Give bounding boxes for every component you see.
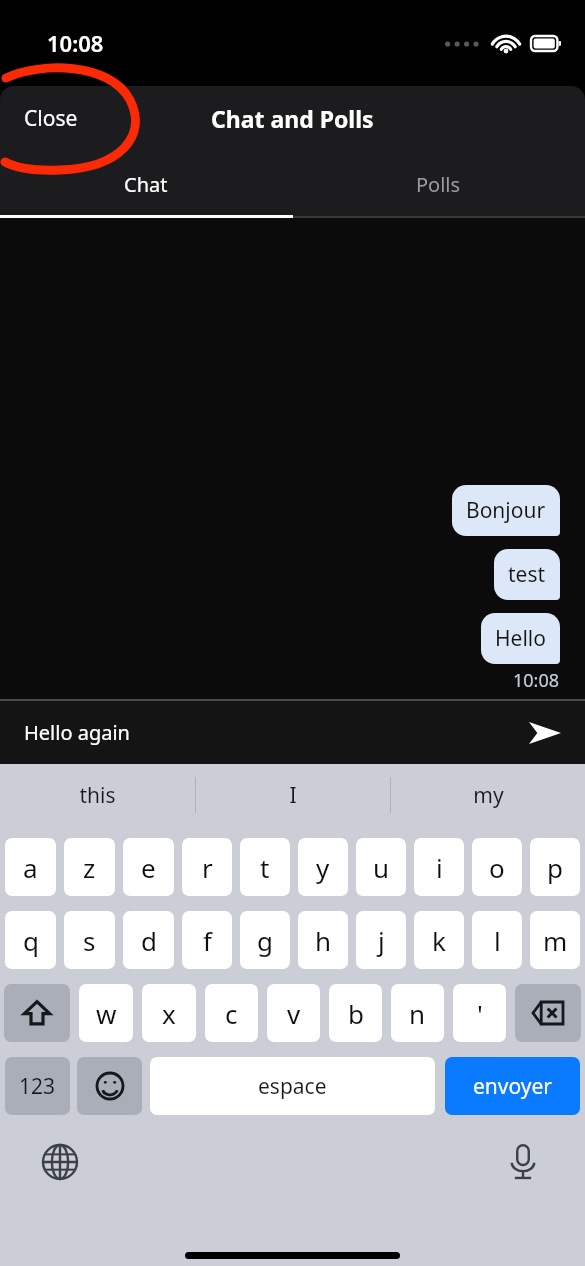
button[interactable]: Hello: [481, 613, 560, 664]
staticText: t: [260, 850, 270, 885]
button[interactable]: this: [0, 764, 195, 826]
button[interactable]: b: [329, 984, 382, 1042]
staticText: s: [83, 923, 96, 958]
button[interactable]: o: [472, 838, 522, 896]
button[interactable]: Dictate: [501, 1140, 545, 1184]
staticText: u: [373, 850, 390, 885]
button[interactable]: Change keyboard: [38, 1140, 82, 1184]
button[interactable]: ': [453, 984, 506, 1042]
button[interactable]: Bonjour: [452, 485, 560, 536]
button[interactable]: i: [414, 838, 464, 896]
staticText: l: [494, 923, 501, 958]
staticText: 10:08: [513, 668, 560, 693]
button[interactable]: v: [267, 984, 320, 1042]
staticText: b: [348, 996, 364, 1031]
staticText: x: [162, 996, 176, 1031]
button[interactable]: p: [530, 838, 580, 896]
staticText: a: [23, 850, 38, 885]
button[interactable]: Send: [521, 709, 569, 757]
button[interactable]: Close: [0, 94, 94, 143]
staticText: d: [141, 923, 157, 958]
button[interactable]: g: [240, 911, 290, 969]
button[interactable]: f: [182, 911, 232, 969]
button[interactable]: Polls: [292, 150, 585, 218]
button[interactable]: y: [298, 838, 348, 896]
staticText: n: [409, 996, 426, 1031]
button[interactable]: Chat: [0, 150, 292, 218]
button[interactable]: u: [356, 838, 406, 896]
staticText: y: [316, 850, 330, 885]
button[interactable]: espace: [150, 1057, 435, 1115]
staticText: Hello: [495, 624, 546, 653]
staticText: 10:08: [47, 28, 104, 58]
button[interactable]: q: [5, 911, 56, 969]
staticText: o: [489, 850, 505, 885]
button[interactable]: test: [494, 549, 560, 600]
staticText: Bonjour: [466, 496, 546, 525]
staticText: espace: [258, 1072, 327, 1101]
button[interactable]: t: [240, 838, 290, 896]
staticText: this: [79, 781, 116, 810]
button[interactable]: Delete: [515, 984, 581, 1042]
staticText: j: [378, 923, 385, 958]
staticText: g: [257, 923, 273, 958]
staticText: my: [473, 781, 504, 810]
staticText: f: [203, 923, 212, 958]
button[interactable]: x: [142, 984, 196, 1042]
button[interactable]: a: [5, 838, 56, 896]
staticText: 123: [19, 1072, 56, 1101]
staticText: w: [96, 996, 117, 1031]
button[interactable]: s: [64, 911, 115, 969]
button[interactable]: Numbers: [5, 1057, 70, 1115]
staticText: k: [432, 923, 446, 958]
button[interactable]: e: [123, 838, 174, 896]
staticText: p: [547, 850, 563, 885]
staticText: q: [23, 923, 39, 958]
button[interactable]: I: [196, 764, 390, 826]
button[interactable]: Emoji: [77, 1057, 142, 1115]
staticText: m: [543, 923, 568, 958]
button[interactable]: l: [472, 911, 522, 969]
button[interactable]: d: [123, 911, 174, 969]
staticText: e: [141, 850, 156, 885]
staticText: Chat and Polls: [211, 103, 374, 134]
button[interactable]: k: [414, 911, 464, 969]
button[interactable]: r: [182, 838, 232, 896]
staticText: v: [287, 996, 301, 1031]
button[interactable]: Shift: [4, 984, 70, 1042]
button[interactable]: m: [530, 911, 580, 969]
button[interactable]: envoyer: [445, 1057, 580, 1115]
staticText: envoyer: [473, 1072, 553, 1101]
staticText: c: [225, 996, 238, 1031]
button[interactable]: n: [391, 984, 444, 1042]
staticText: I: [289, 781, 297, 810]
staticText: Close: [24, 104, 78, 133]
staticText: i: [436, 850, 443, 885]
staticText: Hello again: [24, 719, 130, 746]
staticText: r: [202, 850, 213, 885]
button[interactable]: z: [64, 838, 115, 896]
staticText: z: [83, 850, 96, 885]
button[interactable]: c: [205, 984, 258, 1042]
button[interactable]: my: [391, 764, 585, 826]
staticText: h: [315, 923, 332, 958]
staticText: Polls: [416, 171, 461, 198]
button[interactable]: h: [298, 911, 348, 969]
button[interactable]: w: [79, 984, 133, 1042]
staticText: Chat: [124, 171, 168, 198]
staticText: ': [477, 996, 483, 1031]
button[interactable]: j: [356, 911, 406, 969]
staticText: test: [508, 560, 546, 589]
